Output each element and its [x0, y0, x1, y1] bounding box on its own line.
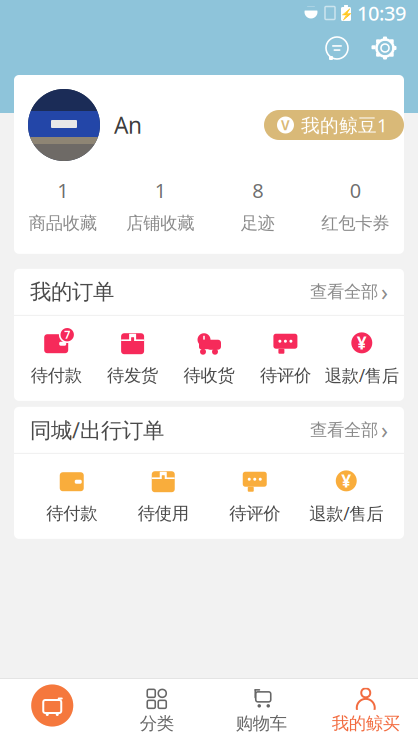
- button[interactable]: 待评价: [247, 317, 324, 400]
- staticText: ›: [381, 277, 388, 307]
- button[interactable]: ¥: [324, 316, 400, 401]
- staticText: 1: [155, 177, 166, 204]
- staticText: 1: [57, 177, 68, 204]
- button[interactable]: 待使用: [117, 455, 209, 538]
- staticText: 0: [350, 177, 361, 204]
- button[interactable]: Messages: [322, 33, 352, 63]
- staticText: ¥: [341, 469, 351, 492]
- button[interactable]: 购物车: [209, 682, 313, 740]
- staticText: 分类: [140, 713, 174, 734]
- staticText: 退款/售后: [325, 364, 399, 387]
- staticText: 店铺收藏: [126, 213, 194, 234]
- staticText: 待评价: [260, 365, 311, 386]
- staticText: 待发货: [107, 365, 158, 386]
- button[interactable]: 1: [14, 175, 111, 236]
- button[interactable]: 8: [209, 175, 306, 236]
- button[interactable]: 待付款: [26, 455, 117, 538]
- staticText: V: [281, 116, 290, 134]
- staticText: 10:39: [357, 0, 406, 26]
- staticText: ›: [381, 415, 388, 445]
- staticText: ¥: [357, 331, 367, 354]
- staticText: 足迹: [241, 213, 275, 234]
- button[interactable]: Profile photo: [28, 89, 100, 161]
- button[interactable]: 分类: [104, 682, 209, 740]
- staticText: 待评价: [229, 503, 280, 524]
- button[interactable]: 7: [18, 317, 94, 400]
- staticText: 待付款: [46, 503, 97, 524]
- staticText: 待付款: [31, 365, 82, 386]
- staticText: 8: [252, 177, 263, 204]
- button[interactable]: 待发货: [94, 317, 171, 400]
- button[interactable]: 查看全部: [310, 411, 388, 449]
- staticText: 我的鲸买: [332, 713, 400, 734]
- button[interactable]: 查看全部: [310, 273, 388, 311]
- staticText: 我的鲸豆1: [301, 113, 388, 137]
- button[interactable]: 我的鲸买: [313, 682, 418, 740]
- button[interactable]: 0: [306, 175, 404, 236]
- button[interactable]: 鲸买 Home: [0, 678, 104, 743]
- staticText: 查看全部: [310, 419, 378, 440]
- staticText: ⚡: [339, 8, 352, 20]
- button[interactable]: Settings: [370, 33, 400, 63]
- button[interactable]: V: [264, 110, 404, 140]
- staticText: 7: [64, 328, 70, 342]
- staticText: 待使用: [138, 503, 189, 524]
- button[interactable]: ¥: [300, 454, 392, 539]
- staticText: 红包卡券: [321, 213, 389, 234]
- staticText: 退款/售后: [309, 502, 383, 525]
- staticText: 查看全部: [310, 281, 378, 302]
- staticText: 购物车: [236, 713, 287, 734]
- staticText: 待收货: [183, 365, 234, 386]
- button[interactable]: 待评价: [209, 455, 300, 538]
- button[interactable]: 1: [111, 175, 209, 236]
- staticText: 同城/出行订单: [30, 416, 164, 444]
- button[interactable]: 待收货: [171, 317, 247, 400]
- staticText: 商品收藏: [29, 213, 97, 234]
- staticText: An: [114, 110, 142, 140]
- staticText: 我的订单: [30, 279, 114, 305]
